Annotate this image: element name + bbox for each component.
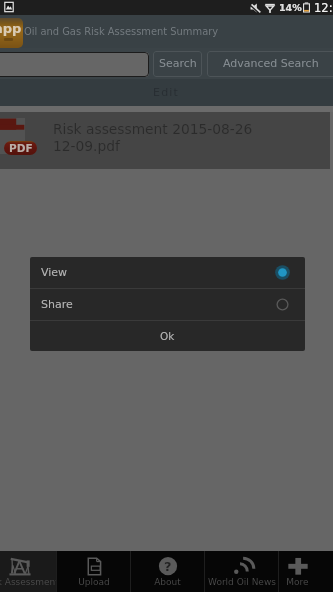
staticText: About	[154, 577, 181, 587]
button[interactable]: App logo	[0, 18, 23, 48]
button[interactable]: Search	[153, 51, 202, 77]
button[interactable]: ?	[131, 551, 204, 592]
button[interactable]: View	[30, 257, 305, 288]
staticText: View	[41, 266, 68, 279]
staticText: Oil and Gas Risk Assessment Summary	[24, 26, 219, 38]
button[interactable]: Share	[30, 289, 305, 320]
staticText: Search	[159, 57, 197, 70]
staticText: Upload	[78, 577, 110, 587]
staticText: World Oil News	[208, 577, 276, 587]
staticText: ?	[164, 559, 172, 574]
button[interactable]: World Oil News	[205, 551, 278, 592]
staticText: Risk assessment 2015-08-26 12-09.pdf	[53, 121, 253, 154]
staticText: Advanced Search	[223, 57, 319, 70]
button[interactable]: Search field	[0, 52, 149, 77]
button[interactable]: More	[279, 551, 316, 592]
staticText: Edit	[153, 86, 180, 99]
staticText: 12:	[314, 1, 333, 14]
staticText: Share	[41, 298, 73, 311]
staticText: Ok	[160, 330, 175, 342]
button[interactable]: Advanced Search	[207, 51, 333, 77]
staticText: 14%	[279, 2, 302, 13]
staticText: More	[286, 577, 309, 587]
other: Screenshot	[3, 1, 15, 13]
button[interactable]: Upload	[57, 551, 130, 592]
button[interactable]: Ok	[30, 321, 305, 351]
staticText: app	[0, 21, 22, 36]
staticText: Risk Assessment	[0, 577, 56, 587]
staticText: PDF	[9, 142, 33, 154]
button[interactable]: PDF	[0, 112, 330, 169]
button[interactable]: Risk Assessment	[0, 551, 56, 592]
